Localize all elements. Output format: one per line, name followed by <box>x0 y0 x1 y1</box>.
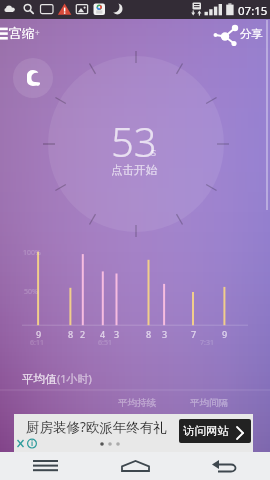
staticText: 07:15 <box>238 3 268 19</box>
staticText: 100% <box>23 248 41 258</box>
staticText: s <box>151 144 157 159</box>
staticText: (1小时) <box>57 371 92 386</box>
button[interactable]: 访问网站 <box>179 419 251 443</box>
other: Menu <box>0 27 8 39</box>
staticText: 53 <box>111 114 157 168</box>
staticText: 8 <box>146 328 152 340</box>
staticText: 厨房装修?欧派年终有礼 <box>26 418 167 436</box>
staticText: 7 <box>191 328 197 340</box>
staticText: + <box>35 27 40 38</box>
button[interactable] <box>14 414 253 452</box>
staticText: 8 <box>68 328 74 340</box>
staticText: 平均间隔 <box>190 397 228 409</box>
staticText: 平均值 <box>22 372 57 386</box>
staticText: 3 <box>114 328 120 340</box>
staticText: 平均持续 <box>118 397 156 409</box>
staticText: 2 <box>80 328 86 340</box>
staticText: 50% <box>24 287 38 297</box>
button[interactable]: Call <box>13 58 53 98</box>
button[interactable]: Back <box>180 452 270 480</box>
staticText: 9 <box>36 328 42 340</box>
staticText: 分享 <box>240 27 263 41</box>
staticText: 3 <box>162 328 168 340</box>
staticText: 4 <box>100 328 106 340</box>
staticText: 7:31 <box>200 338 214 348</box>
staticText: 9 <box>222 328 228 340</box>
button[interactable]: 分享 <box>213 22 263 46</box>
staticText: 点击开始 <box>111 163 157 177</box>
button[interactable]: Home <box>90 452 180 480</box>
button[interactable]: Menu <box>0 22 40 44</box>
staticText: 宫缩 <box>9 25 35 41</box>
button[interactable]: Recent apps <box>0 452 90 480</box>
staticText: 访问网站 <box>183 424 229 438</box>
staticText: 6:11 <box>30 338 44 348</box>
staticText: 6:51 <box>98 338 112 348</box>
